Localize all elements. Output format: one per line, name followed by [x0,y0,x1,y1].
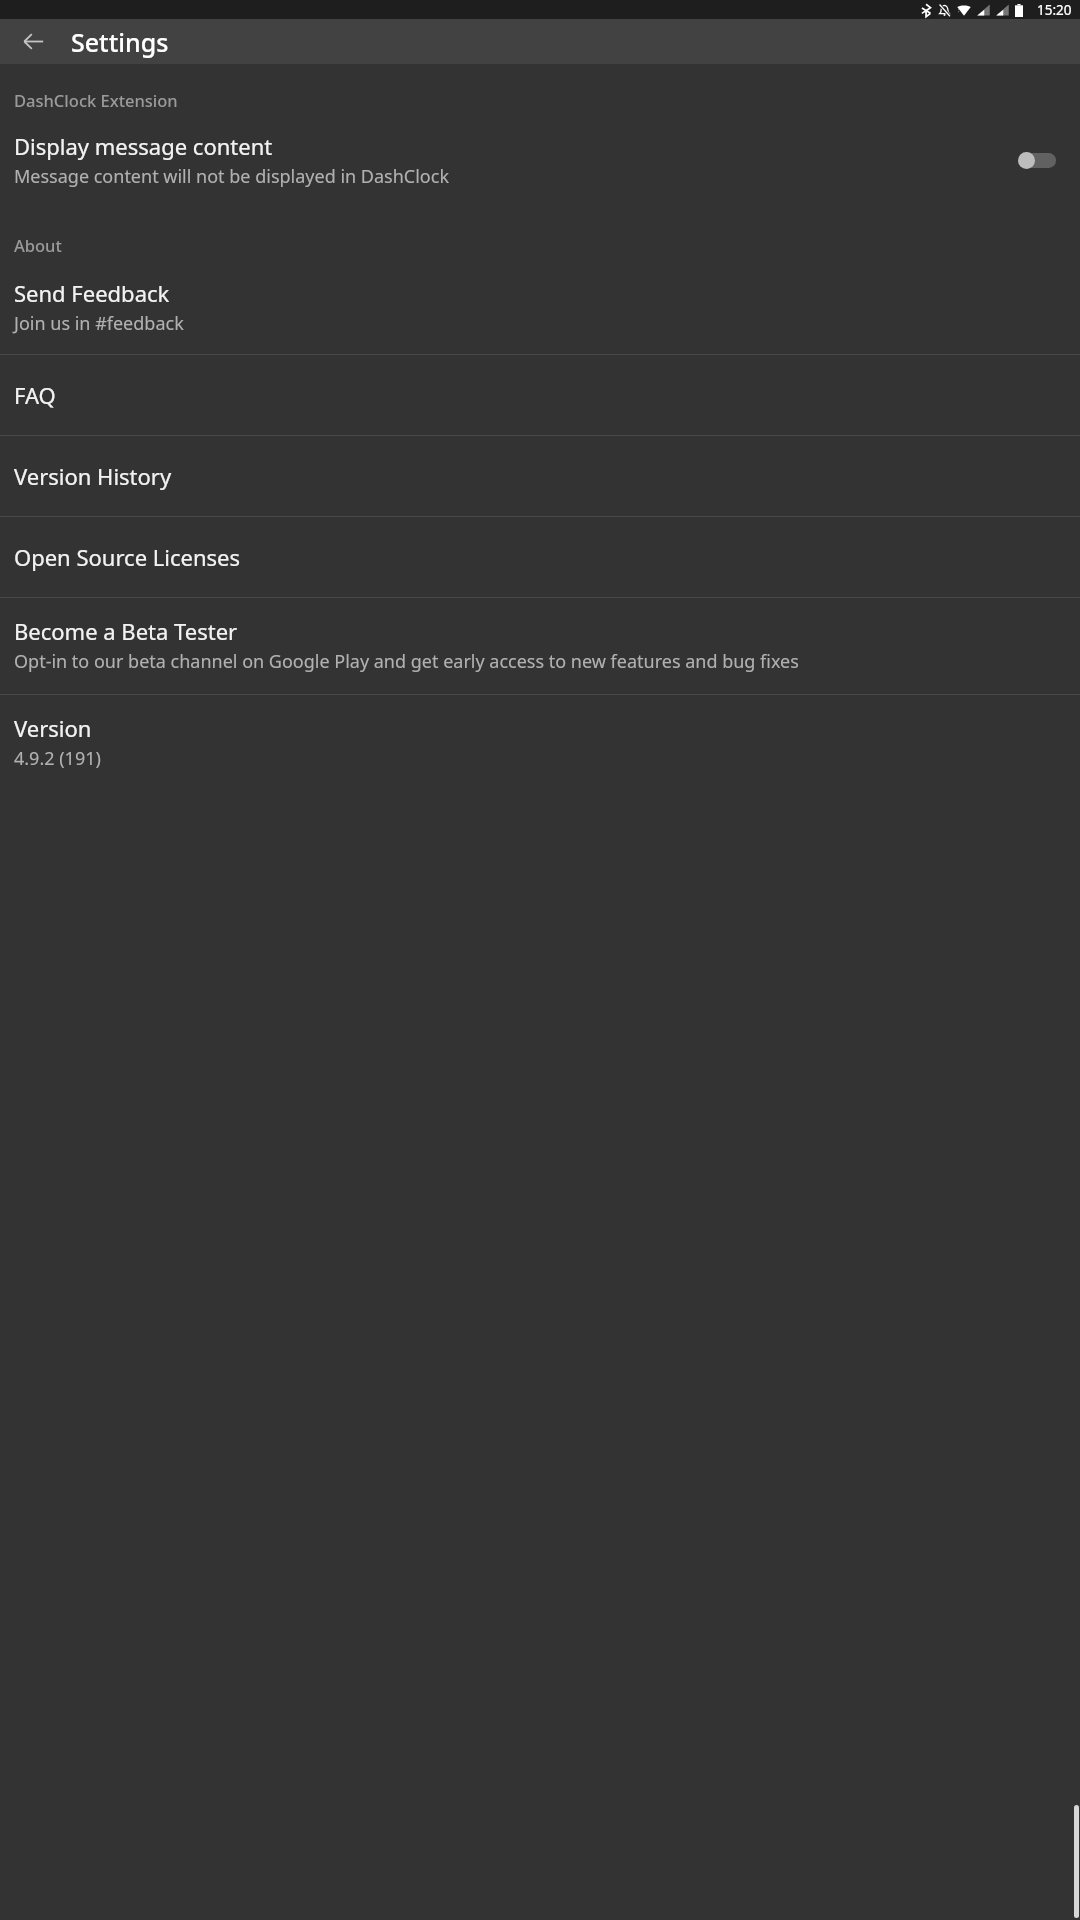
button[interactable]: Version History [0,436,1080,516]
staticText: Send Feedback [14,278,170,308]
staticText: Version [14,713,92,743]
staticText: Join us in #feedback [14,311,184,336]
button[interactable]: FAQ [0,355,1080,435]
staticText: Settings [71,25,169,59]
button[interactable]: Become a Beta Tester [0,598,1080,694]
button[interactable]: Back [9,19,57,64]
staticText: FAQ [14,380,56,410]
button[interactable]: Display message content [0,119,1080,201]
staticText: Display message content [14,131,273,161]
staticText: 15:20 [1037,1,1072,19]
button[interactable]: Display message content toggle [1018,147,1060,173]
staticText: Version History [14,461,172,491]
staticText: Become a Beta Tester [14,616,238,646]
button[interactable]: Version [0,695,1080,789]
staticText: Message content will not be displayed in… [14,164,450,189]
button[interactable]: Send Feedback [0,264,1080,354]
staticText: 4.9.2 (191) [14,746,101,771]
staticText: About [14,234,62,256]
staticText: DashClock Extension [14,89,178,111]
staticText: Open Source Licenses [14,542,241,572]
button[interactable]: Open Source Licenses [0,517,1080,597]
staticText: Opt-in to our beta channel on Google Pla… [14,649,799,674]
